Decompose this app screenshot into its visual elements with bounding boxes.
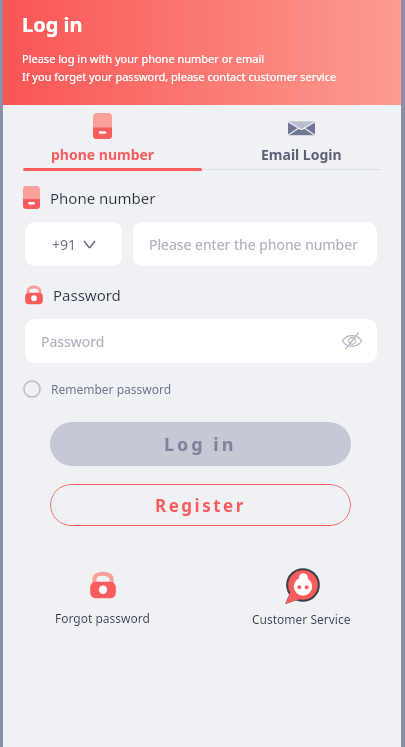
button[interactable]: Please enter the phone number — [133, 222, 377, 266]
staticText: Log in — [164, 432, 237, 457]
button[interactable]: Password — [25, 319, 377, 363]
staticText: Remember password — [51, 381, 172, 397]
staticText: Log in — [22, 11, 83, 38]
button[interactable]: Forgot password — [3, 568, 202, 626]
staticText: Please enter the phone number — [149, 235, 358, 254]
button[interactable]: +91 — [25, 222, 122, 266]
staticText: Password — [53, 285, 121, 305]
button[interactable]: Email Login — [202, 113, 401, 164]
button[interactable]: Register — [50, 484, 351, 526]
button[interactable]: Remember password — [23, 378, 180, 400]
staticText: Password — [41, 332, 105, 351]
staticText: Register — [155, 494, 246, 517]
staticText: Customer Service — [252, 611, 351, 627]
staticText: Email Login — [261, 145, 342, 164]
staticText: Forgot password — [55, 610, 150, 626]
button[interactable]: Customer Service — [202, 568, 401, 627]
button[interactable]: Log in — [50, 422, 351, 466]
staticText: phone number — [51, 145, 155, 164]
button[interactable]: Toggle password visibility — [341, 330, 363, 352]
staticText: +91 — [52, 235, 77, 254]
staticText: If you forget your password, please cont… — [22, 69, 337, 84]
staticText: Please log in with your phone number or … — [22, 51, 265, 66]
staticText: Phone number — [50, 188, 156, 208]
button[interactable]: phone number — [3, 113, 202, 164]
